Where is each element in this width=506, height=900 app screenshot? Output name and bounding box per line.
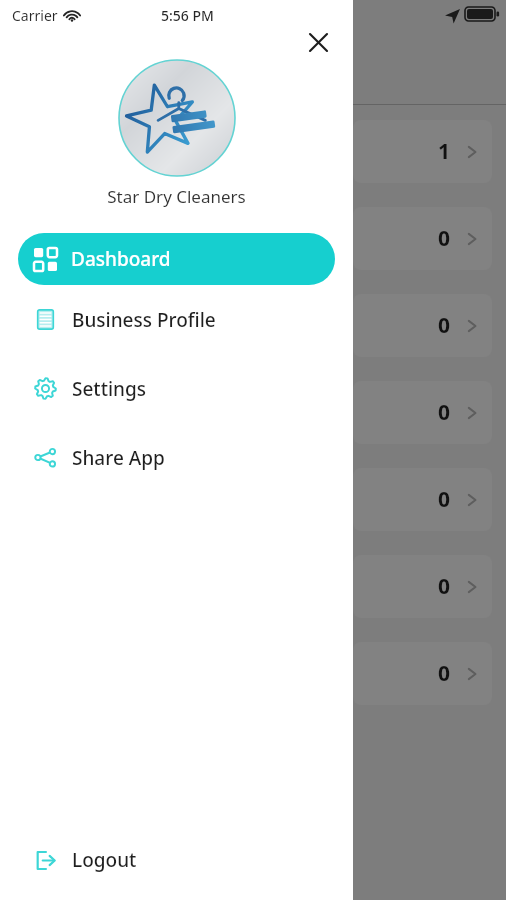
staticText: 5:56 PM — [161, 6, 214, 25]
button[interactable]: 0 — [353, 381, 492, 444]
button[interactable]: Settings — [0, 354, 353, 423]
button[interactable]: Business Profile — [0, 285, 353, 354]
button[interactable]: 1 — [353, 120, 492, 183]
staticText: Share App — [72, 445, 165, 471]
staticText: 0 — [438, 224, 451, 253]
staticText: Dashboard — [71, 246, 171, 272]
staticText: Logout — [72, 847, 137, 873]
button[interactable]: Dashboard — [18, 233, 335, 285]
button[interactable]: 0 — [353, 555, 492, 618]
button[interactable]: 0 — [353, 294, 492, 357]
staticText: Settings — [72, 376, 146, 402]
staticText: Star Dry Cleaners — [0, 185, 353, 208]
staticText: 1 — [438, 137, 451, 166]
staticText: 0 — [438, 572, 451, 601]
button[interactable]: 0 — [353, 207, 492, 270]
button[interactable]: Logout — [0, 832, 353, 888]
button[interactable]: 0 — [353, 642, 492, 705]
button[interactable]: Share App — [0, 423, 353, 492]
staticText: 0 — [438, 311, 451, 340]
button[interactable]: 0 — [353, 468, 492, 531]
staticText: 0 — [438, 485, 451, 514]
button[interactable]: Close — [301, 30, 335, 54]
staticText: 0 — [438, 398, 451, 427]
staticText: Business Profile — [72, 307, 216, 333]
staticText: Carrier — [12, 6, 58, 25]
staticText: 0 — [438, 659, 451, 688]
